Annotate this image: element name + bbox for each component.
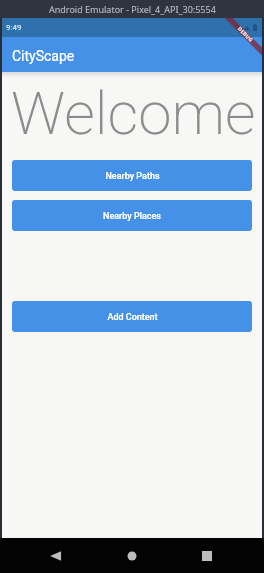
staticText: Nearby Paths xyxy=(105,171,160,182)
button[interactable]: Add Content xyxy=(12,301,252,332)
button[interactable]: Back xyxy=(41,539,75,573)
staticText: Welcome xyxy=(11,78,256,148)
button[interactable]: Recent apps xyxy=(190,539,224,573)
button[interactable]: Home xyxy=(115,539,149,573)
staticText: 9:49 xyxy=(6,23,22,32)
button[interactable]: Nearby Places xyxy=(12,200,252,231)
staticText: Nearby Places xyxy=(103,211,161,222)
button[interactable]: Nearby Paths xyxy=(12,160,252,191)
button[interactable]: CityScape xyxy=(12,48,75,64)
staticText: Add Content xyxy=(107,312,158,323)
staticText: Android Emulator - Pixel_4_API_30:5554 xyxy=(49,3,216,15)
